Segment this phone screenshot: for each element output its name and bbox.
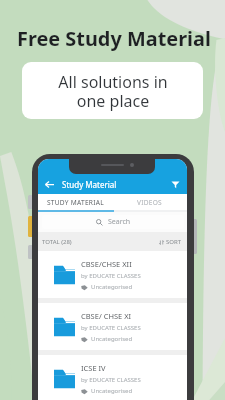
staticText: ICSE IV <box>81 363 106 373</box>
button[interactable]: SORT <box>159 238 182 246</box>
button[interactable]: VIDEOS <box>112 194 187 212</box>
button[interactable]: Back <box>43 178 56 191</box>
staticText: Uncategorised <box>91 283 133 291</box>
button[interactable]: ICSE IV <box>38 355 187 400</box>
button[interactable]: CBSE/CHSE XII <box>38 251 187 298</box>
staticText: Search <box>108 217 131 227</box>
staticText: by EDUCATE CLASSES <box>81 272 141 280</box>
button[interactable]: STUDY MATERIAL <box>38 194 112 212</box>
staticText: TOTAL (28) <box>42 238 72 246</box>
staticText: Uncategorised <box>91 335 133 343</box>
staticText: STUDY MATERIAL <box>47 198 104 207</box>
staticText: by EDUCATE CLASSES <box>81 324 141 332</box>
staticText: All solutions in one place <box>58 71 168 111</box>
button[interactable]: Search <box>42 215 184 229</box>
staticText: Study Material <box>62 179 117 190</box>
staticText: Uncategorised <box>91 387 133 395</box>
staticText: by EDUCATE CLASSES <box>81 376 141 384</box>
staticText: CBSE/CHSE XII <box>81 259 132 269</box>
button[interactable]: CBSE/ CHSE XI <box>38 303 187 350</box>
staticText: VIDEOS <box>137 198 162 207</box>
staticText: SORT <box>166 238 182 246</box>
staticText: CBSE/ CHSE XI <box>81 311 132 321</box>
staticText: Free Study Material <box>17 25 211 52</box>
button[interactable]: Filter <box>169 178 182 191</box>
